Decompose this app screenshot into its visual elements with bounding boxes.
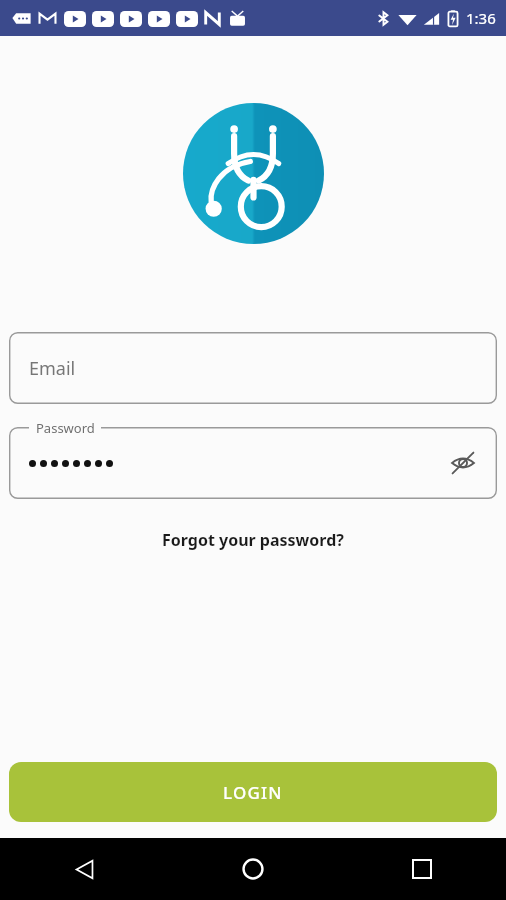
staticText: LOGIN — [223, 781, 283, 804]
staticText: Password — [36, 419, 95, 437]
button[interactable]: Back — [0, 838, 168, 900]
button[interactable] — [9, 427, 497, 499]
button[interactable]: Forgot your password? — [156, 525, 350, 555]
button[interactable]: Home — [168, 838, 337, 900]
staticText: 1:36 — [466, 8, 496, 28]
staticText: Forgot your password? — [162, 529, 344, 551]
button[interactable]: Email — [9, 332, 497, 404]
button[interactable]: Recents — [337, 838, 506, 900]
staticText: Email — [29, 356, 76, 381]
button[interactable]: Hide password — [443, 443, 483, 483]
button[interactable]: LOGIN — [9, 762, 497, 822]
